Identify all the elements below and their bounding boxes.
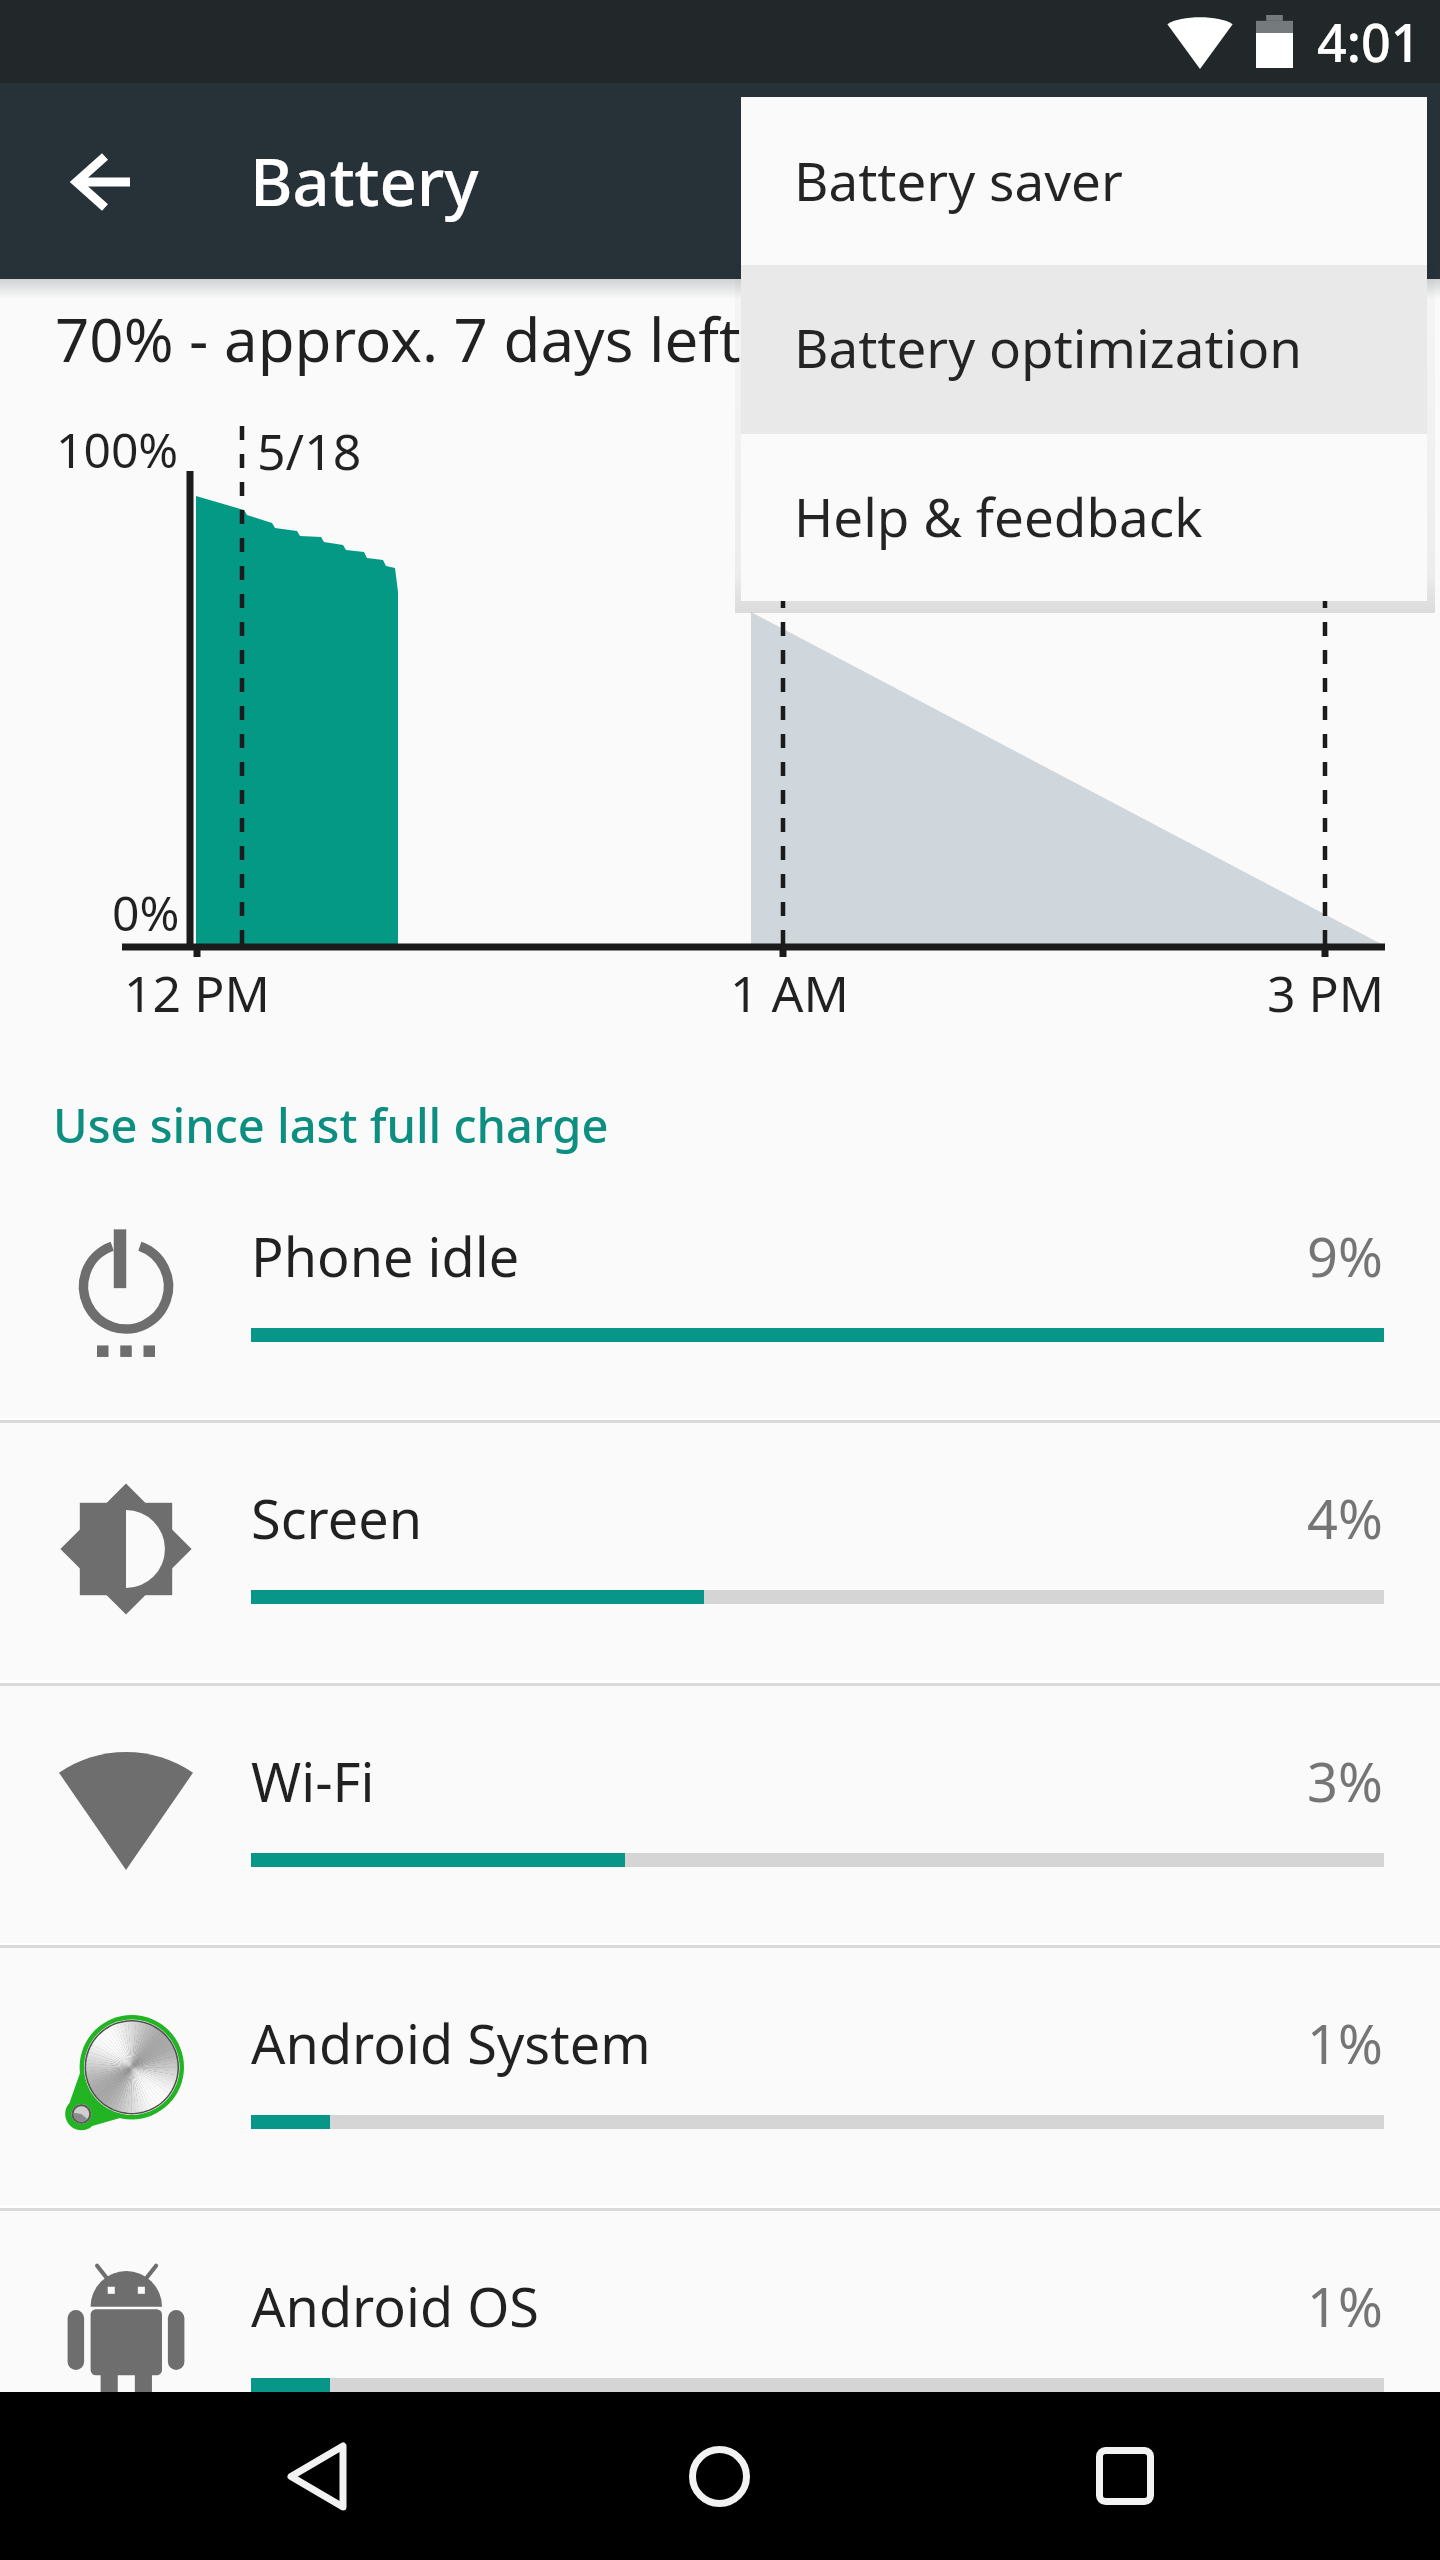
staticText: 3 PM [1267,959,1385,1027]
staticText: 1% [1307,2006,1383,2080]
staticText: Use since last full charge [53,1093,609,1157]
staticText: Phone idle [251,1219,520,1293]
staticText: Help & feedback [794,480,1203,552]
button[interactable]: Help & feedback [741,434,1427,601]
button[interactable]: Battery saver [741,97,1427,265]
button[interactable]: Navigate up [45,126,157,238]
staticText: Screen [251,1481,423,1555]
staticText: Android System [251,2006,651,2080]
button[interactable]: Screen [0,1420,1440,1683]
staticText: Battery saver [794,144,1123,216]
staticText: 5/18 [257,417,362,485]
staticText: 4:01 [1317,6,1421,77]
staticText: Battery optimization [794,311,1303,383]
staticText: 70% - approx. 7 days left [55,298,741,380]
staticText: Battery [250,137,479,226]
button[interactable]: Recent apps [1045,2392,1205,2560]
staticText: Wi-Fi [251,1744,375,1818]
button[interactable]: Home [639,2392,799,2560]
button[interactable]: Phone idle [0,1158,1440,1421]
staticText: 4% [1307,1481,1383,1555]
button[interactable]: Wi-Fi [0,1683,1440,1946]
button[interactable]: Android OS [0,2208,1440,2471]
staticText: 100% [56,417,179,482]
button[interactable]: Battery optimization [741,265,1427,434]
button[interactable]: Android System [0,1945,1440,2208]
staticText: 0% [112,880,180,945]
staticText: Android OS [251,2269,539,2343]
staticText: 9% [1307,1219,1383,1293]
staticText: 3% [1307,1744,1383,1818]
staticText: 1% [1307,2269,1383,2343]
staticText: 1 AM [730,959,849,1027]
button[interactable]: Back [237,2392,397,2560]
staticText: 12 PM [124,959,270,1027]
